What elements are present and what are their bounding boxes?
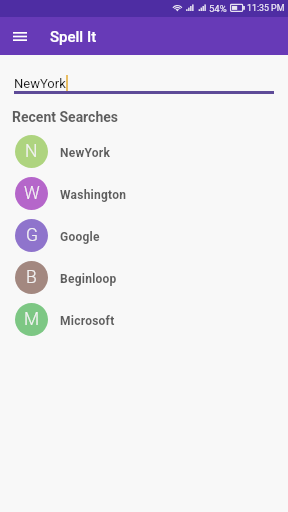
button[interactable]: NewYork [0, 55, 288, 97]
staticText: NewYork [14, 76, 66, 91]
staticText: B [26, 267, 37, 288]
staticText: Spell It [50, 28, 97, 46]
button[interactable]: W [0, 172, 288, 214]
button[interactable]: M [0, 298, 288, 340]
staticText: M [24, 309, 40, 330]
staticText: Washington [60, 188, 127, 202]
button[interactable]: B [0, 256, 288, 298]
staticText: Google [60, 230, 100, 244]
staticText: 54% [209, 3, 227, 14]
staticText: 11:35 PM [247, 3, 285, 13]
staticText: G [26, 225, 38, 246]
staticText: N [25, 141, 38, 162]
button[interactable]: N [0, 130, 288, 172]
staticText: Microsoft [60, 314, 115, 328]
staticText: Beginloop [60, 272, 117, 286]
staticText: NewYork [60, 146, 111, 160]
button[interactable]: G [0, 214, 288, 256]
staticText: Recent Searches [12, 109, 119, 125]
button[interactable]: Open navigation menu [5, 21, 35, 51]
staticText: W [24, 183, 40, 204]
